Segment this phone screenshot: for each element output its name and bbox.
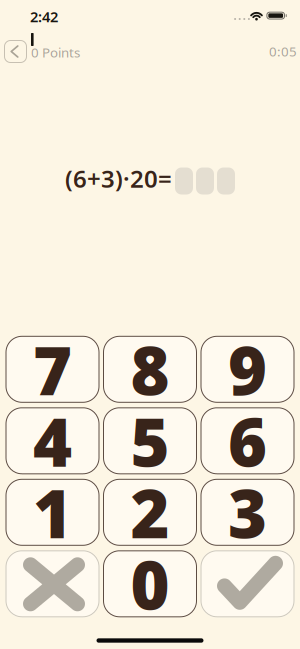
button[interactable]: 8 [103, 336, 197, 403]
staticText: 4 [33, 396, 72, 485]
staticText: 3 [228, 468, 267, 556]
button[interactable]: 9 [200, 336, 294, 403]
staticText: 0 Points [31, 43, 80, 61]
staticText: 8 [130, 325, 169, 413]
button[interactable]: 3 [200, 479, 294, 546]
staticText: 0 [130, 539, 169, 628]
button[interactable]: 1 [5, 479, 99, 546]
staticText: 2:42 [30, 7, 58, 26]
staticText: 9 [228, 325, 267, 413]
staticText: 7 [33, 325, 72, 413]
button[interactable]: 6 [200, 407, 294, 474]
button[interactable]: 4 [5, 407, 99, 474]
button[interactable]: 0 [103, 550, 197, 617]
staticText: 1 [33, 468, 72, 556]
staticText: 0:05 [269, 42, 297, 60]
staticText: (6+3)·20= [65, 163, 172, 194]
button[interactable]: Back [4, 40, 27, 63]
button[interactable]: 2 [103, 479, 197, 546]
button[interactable]: 5 [103, 407, 197, 474]
staticText: 2 [130, 468, 169, 556]
button[interactable]: 7 [5, 336, 99, 403]
staticText: 6 [228, 396, 267, 485]
button[interactable]: Confirm [200, 550, 294, 617]
staticText: 5 [130, 396, 169, 485]
button[interactable]: Delete [5, 550, 99, 617]
